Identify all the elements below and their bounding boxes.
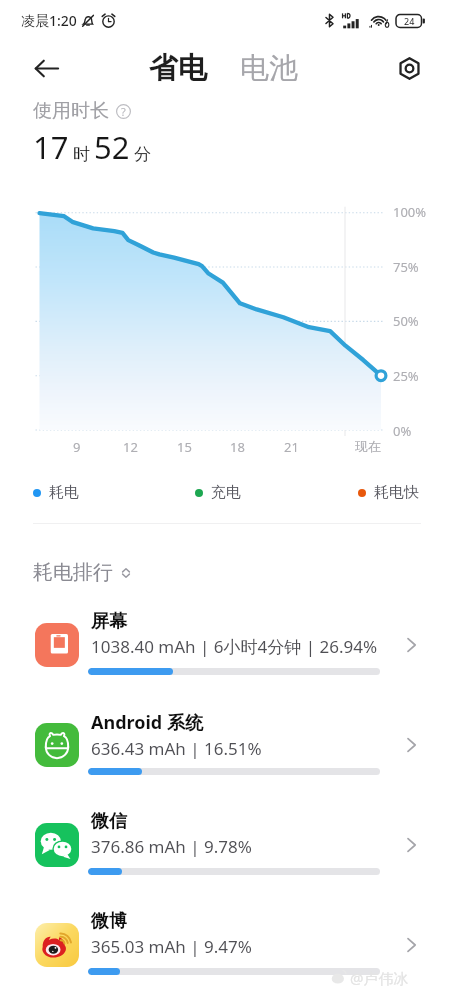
staticText: 时 (73, 144, 90, 165)
button[interactable]: 微博 (0, 883, 450, 983)
button[interactable]: 屏幕 (0, 583, 450, 683)
button[interactable]: 省电 (146, 50, 210, 87)
staticText: 分 (134, 144, 151, 165)
staticText: 微信 (91, 810, 127, 833)
staticText: Android 系统 (91, 710, 203, 735)
staticText: 365.03 mAh | 9.47% (91, 935, 252, 958)
button[interactable]: Back (28, 50, 64, 86)
button[interactable]: 耗电排行 (33, 560, 133, 585)
staticText: 100% (393, 203, 427, 221)
staticText: 376.86 mAh | 9.78% (91, 835, 252, 858)
staticText: 636.43 mAh | 16.51% (91, 737, 262, 760)
button[interactable]: 耗电 (33, 483, 79, 502)
staticText: 0% (393, 422, 412, 440)
staticText: ? (121, 104, 126, 119)
staticText: @卢伟冰 (350, 968, 409, 988)
staticText: 耗电排行 (33, 560, 113, 585)
staticText: 1038.40 mAh | 6小时4分钟 | 26.94% (91, 635, 378, 658)
button[interactable]: Help (116, 104, 131, 119)
staticText: 25% (393, 367, 419, 385)
staticText: 使用时长 (33, 99, 109, 123)
staticText: 现在 (355, 438, 381, 454)
staticText: 凌晨1:20 (21, 11, 77, 30)
button[interactable]: 充电 (195, 483, 241, 502)
staticText: 12 (123, 438, 138, 456)
staticText: 耗电 (49, 483, 79, 502)
staticText: 75% (393, 258, 419, 276)
staticText: 省电 (149, 50, 207, 87)
staticText: 21 (284, 438, 299, 456)
staticText: 9 (73, 438, 81, 456)
button[interactable]: 电池 (237, 50, 301, 87)
button[interactable]: Android 系统 (0, 683, 450, 783)
staticText: 微博 (91, 910, 127, 933)
button[interactable]: Settings (392, 51, 426, 85)
staticText: 18 (230, 438, 245, 456)
staticText: 电池 (240, 50, 298, 87)
staticText: 52 (94, 126, 130, 168)
staticText: 15 (177, 438, 192, 456)
staticText: 充电 (211, 483, 241, 502)
staticText: 屏幕 (91, 610, 127, 633)
button[interactable]: 耗电快 (358, 483, 419, 502)
staticText: 17 (33, 126, 69, 168)
button[interactable]: 微信 (0, 783, 450, 883)
staticText: 24 (404, 15, 415, 27)
staticText: 50% (393, 312, 419, 330)
staticText: 耗电快 (374, 483, 419, 502)
